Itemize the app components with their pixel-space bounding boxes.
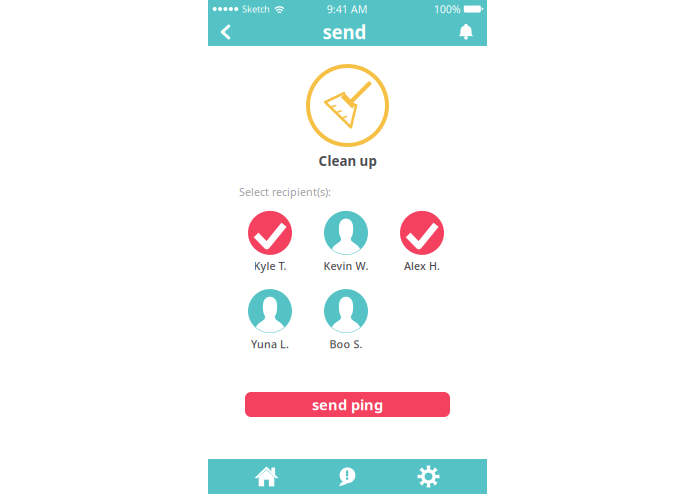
- button[interactable]: Notifications: [449, 18, 483, 46]
- staticText: Kyle T.: [253, 259, 286, 273]
- button[interactable]: Kyle T.: [232, 211, 308, 273]
- staticText: Alex H.: [404, 259, 440, 273]
- button[interactable]: Alerts: [307, 459, 388, 494]
- staticText: Select recipient(s):: [239, 185, 331, 199]
- button[interactable]: Boo S.: [308, 289, 384, 351]
- button[interactable]: Yuna L.: [232, 289, 308, 351]
- button[interactable]: Back: [211, 18, 240, 46]
- staticText: 9:41 AM: [327, 2, 368, 16]
- staticText: send ping: [312, 395, 383, 414]
- staticText: Kevin W.: [323, 259, 368, 273]
- staticText: 100%: [434, 2, 461, 16]
- staticText: Yuna L.: [251, 337, 289, 351]
- staticText: send: [322, 20, 366, 44]
- button[interactable]: Home: [226, 459, 307, 494]
- staticText: Sketch: [242, 3, 270, 15]
- button[interactable]: Settings: [388, 459, 469, 494]
- button[interactable]: Kevin W.: [308, 211, 384, 273]
- staticText: Clean up: [318, 152, 376, 170]
- button[interactable]: send ping: [245, 392, 450, 417]
- button[interactable]: Alex H.: [384, 211, 460, 273]
- staticText: Boo S.: [329, 337, 362, 351]
